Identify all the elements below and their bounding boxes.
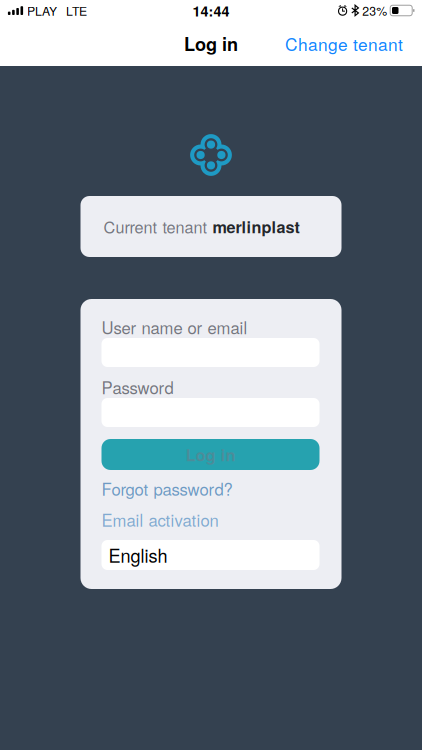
button[interactable]: Log in	[101, 439, 319, 470]
staticText: Password	[101, 375, 173, 399]
staticText: English	[108, 542, 167, 568]
staticText: Log in	[185, 443, 235, 466]
staticText: 14:44	[192, 0, 229, 21]
button[interactable]: Email activation	[101, 511, 218, 528]
staticText: Current tenant	[103, 215, 212, 238]
staticText: 23%	[362, 2, 387, 19]
staticText: User name or email	[101, 315, 247, 339]
staticText: merlinplast	[212, 215, 299, 238]
button[interactable]: English	[101, 540, 319, 570]
staticText: PLAY	[27, 2, 57, 19]
staticText: Change tenant	[285, 31, 403, 56]
staticText: LTE	[66, 2, 87, 19]
staticText: Log in	[184, 30, 238, 56]
staticText: Forgot password?	[101, 477, 232, 500]
button[interactable]: Current tenant	[80, 196, 341, 257]
button[interactable]: Change tenant	[279, 21, 409, 66]
staticText: Email activation	[101, 508, 218, 531]
button[interactable]: Forgot password?	[101, 480, 232, 497]
